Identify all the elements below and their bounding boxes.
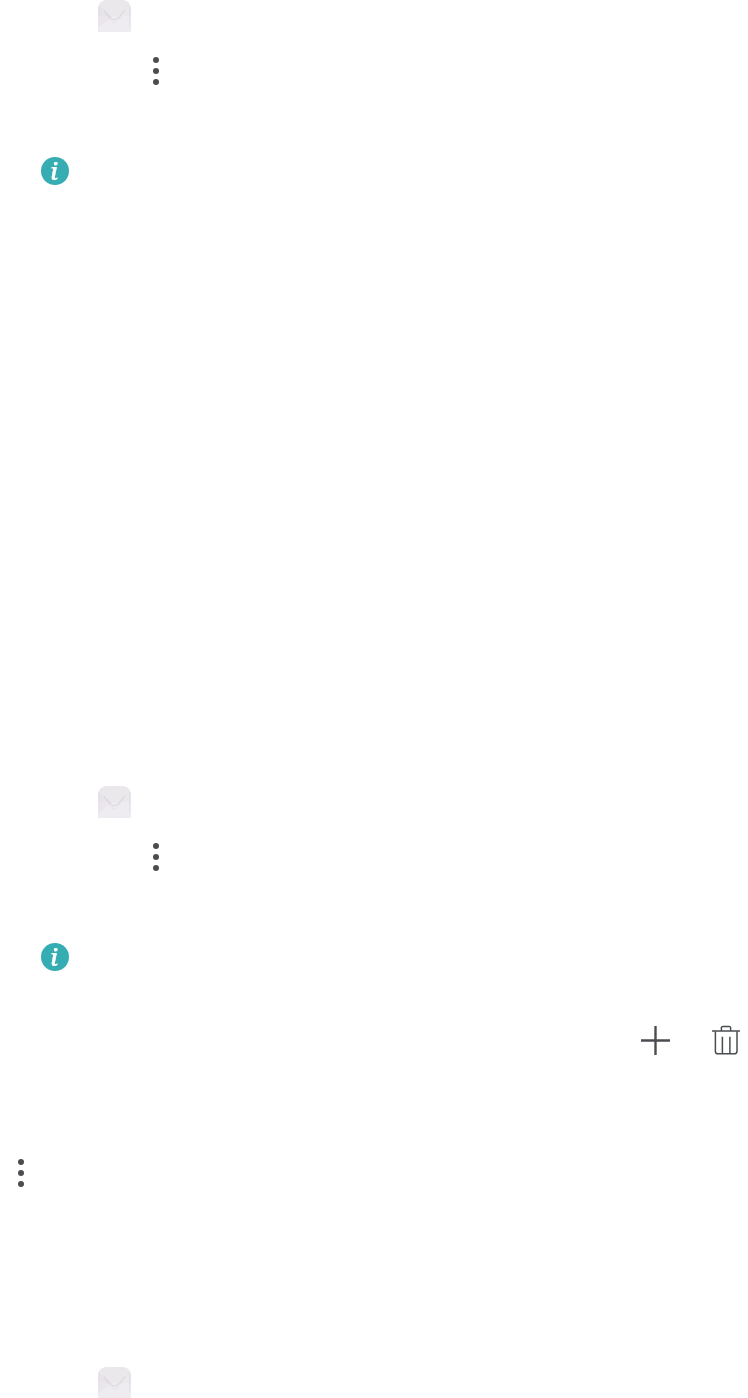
staticText: i [50,157,58,183]
button[interactable]: More information [41,157,69,185]
button[interactable]: Inbox [0,786,748,1367]
button[interactable]: Inbox [0,0,748,786]
button[interactable]: More options [138,839,174,875]
button[interactable]: Conversation options [3,1155,39,1191]
button[interactable]: Inbox [0,1367,748,1398]
staticText: i [50,943,58,969]
button[interactable]: Add [633,1018,677,1062]
button[interactable]: More information [41,943,69,971]
button[interactable]: More options [138,53,174,89]
button[interactable]: Delete [704,1018,748,1062]
